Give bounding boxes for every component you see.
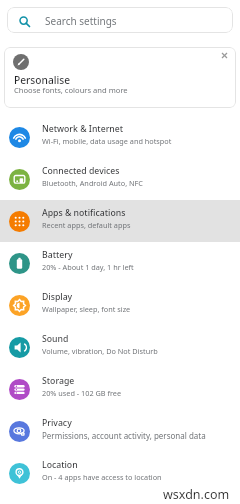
- staticText: Storage: [42, 375, 75, 387]
- staticText: Apps & notifications: [42, 207, 126, 219]
- staticText: Connected devices: [42, 165, 120, 177]
- staticText: Display: [42, 291, 73, 303]
- button[interactable]: [217, 48, 232, 63]
- button[interactable]: Location: [0, 452, 240, 494]
- staticText: Location: [42, 459, 78, 471]
- staticText: Permissions, account activity, personal …: [42, 430, 206, 441]
- staticText: Search settings: [45, 14, 117, 28]
- button[interactable]: Sound: [0, 326, 240, 368]
- staticText: Choose fonts, colours and more: [14, 85, 128, 95]
- button[interactable]: Display: [0, 284, 240, 326]
- button[interactable]: Connected devices: [0, 158, 240, 200]
- staticText: wsxdn.com: [163, 486, 230, 503]
- button[interactable]: Personalise: [4, 47, 236, 108]
- staticText: Sound: [42, 333, 69, 345]
- staticText: Personalise: [14, 73, 71, 87]
- button[interactable]: Battery: [0, 242, 240, 284]
- staticText: Bluetooth, Android Auto, NFC: [42, 178, 143, 188]
- button[interactable]: Search settings: [7, 7, 233, 33]
- staticText: Battery: [42, 249, 73, 261]
- staticText: Privacy: [42, 417, 72, 429]
- button[interactable]: Apps & notifications: [0, 200, 240, 242]
- staticText: Wallpaper, sleep, font size: [42, 304, 131, 314]
- button[interactable]: Network & Internet: [0, 116, 240, 158]
- staticText: 20% used - 102 GB free: [42, 388, 122, 398]
- staticText: 20% - About 1 day, 1 hr left: [42, 262, 134, 272]
- staticText: Recent apps, default apps: [42, 220, 131, 230]
- button[interactable]: Privacy: [0, 410, 240, 452]
- staticText: Wi-Fi, mobile, data usage and hotspot: [42, 136, 172, 146]
- staticText: Volume, vibration, Do Not Disturb: [42, 346, 158, 356]
- button[interactable]: Storage: [0, 368, 240, 410]
- staticText: On - 4 apps have access to location: [42, 472, 162, 482]
- staticText: Network & Internet: [42, 123, 124, 135]
